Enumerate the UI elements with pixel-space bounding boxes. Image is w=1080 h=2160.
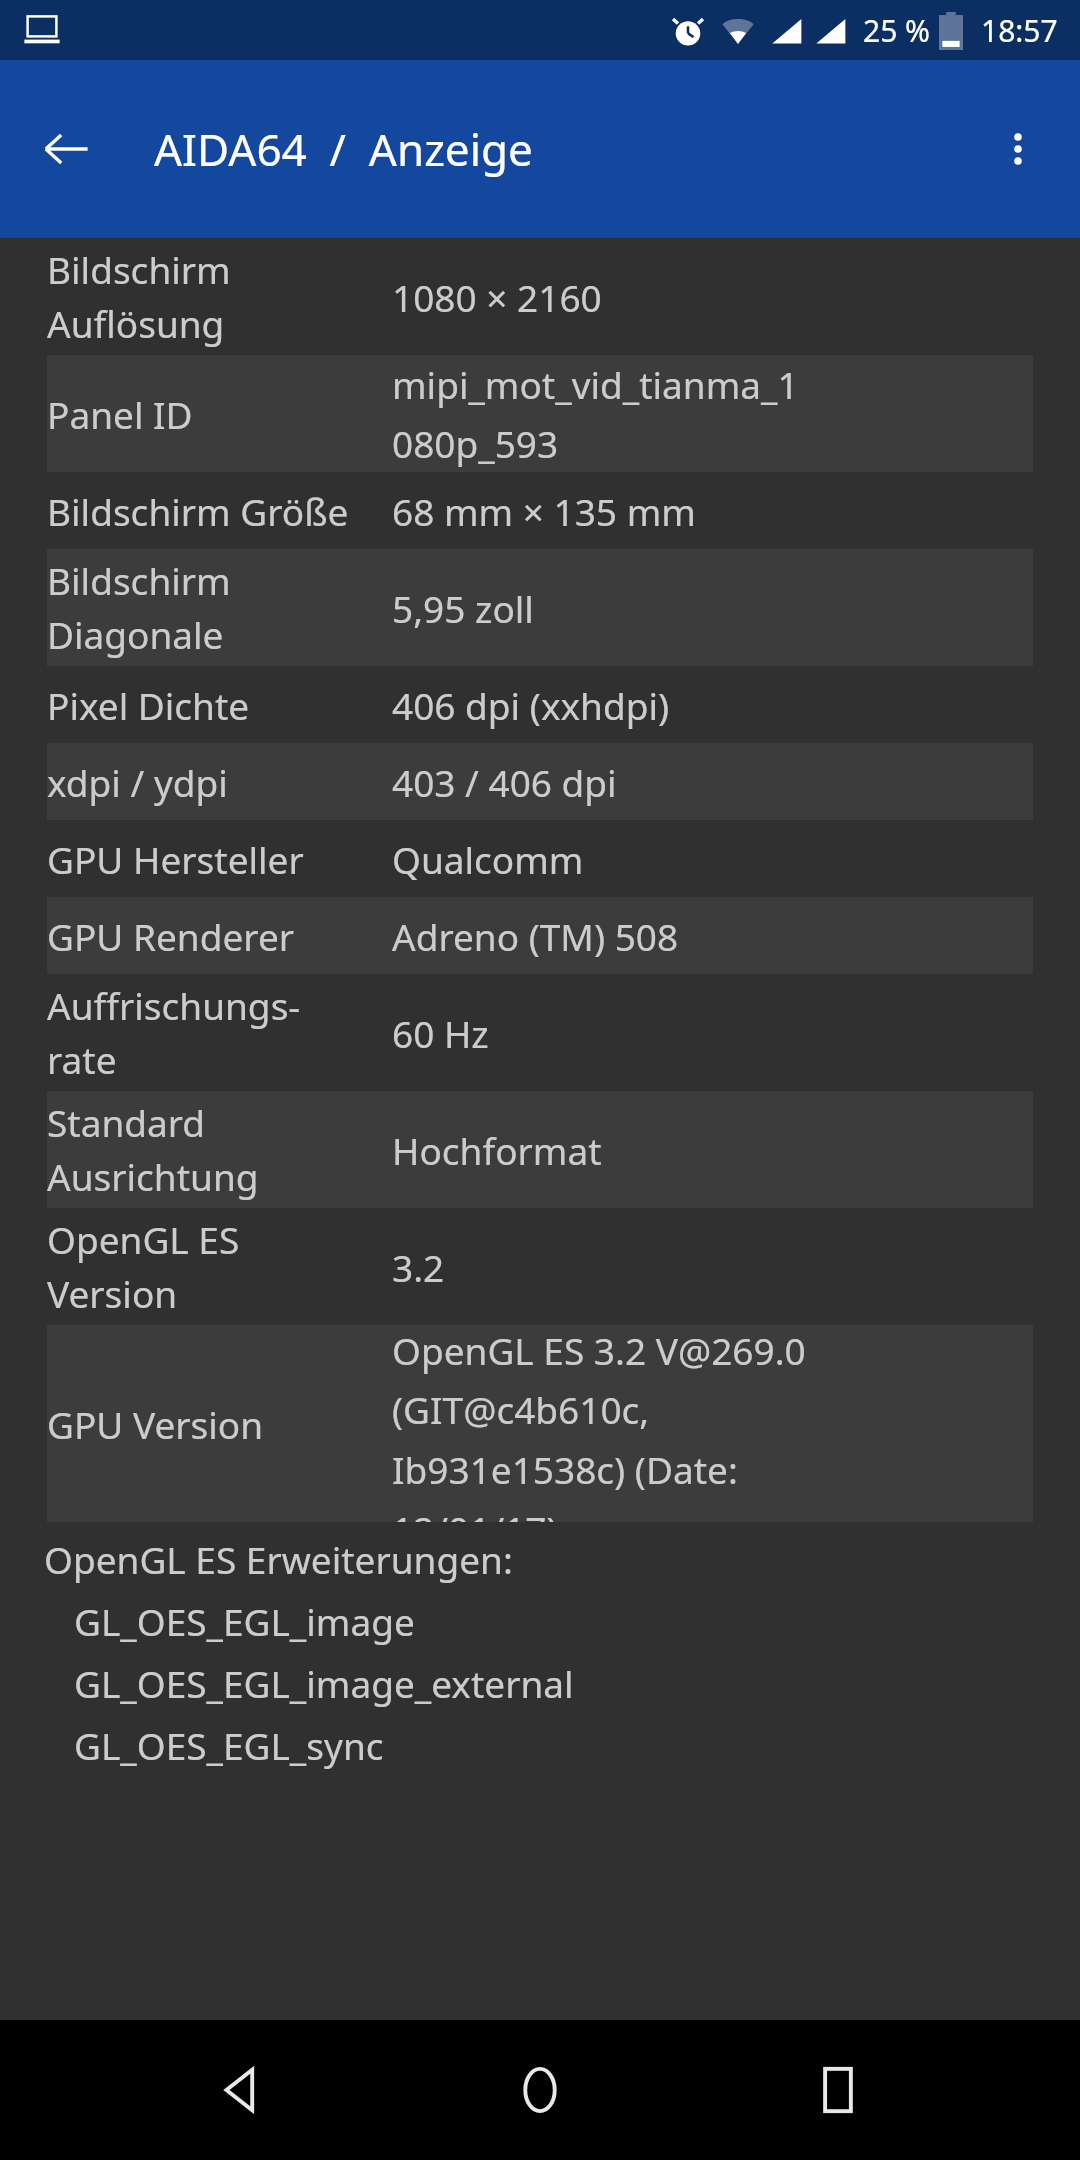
button[interactable]: xdpi / ydpi <box>0 743 1080 820</box>
staticText: 403 / 406 dpi <box>392 757 617 807</box>
button[interactable]: Bildschirm Diagonale <box>0 549 1080 666</box>
staticText: xdpi / ydpi <box>47 757 377 807</box>
staticText: OpenGL ES Version <box>47 1214 377 1319</box>
staticText: 68 mm × 135 mm <box>392 486 696 536</box>
staticText: Panel ID <box>47 389 377 439</box>
button[interactable]: Panel ID <box>0 355 1080 472</box>
button[interactable]: GPU Version <box>0 1325 1080 1522</box>
button[interactable]: Auffrischungs- rate <box>0 974 1080 1091</box>
staticText: 1080 × 2160 <box>392 272 602 322</box>
button[interactable]: Standard Ausrichtung <box>0 1091 1080 1208</box>
button[interactable]: Home <box>485 2035 595 2145</box>
button[interactable]: More options <box>980 111 1056 187</box>
button[interactable]: Bildschirm Auflösung <box>0 238 1080 355</box>
staticText: AIDA64 / Anzeige <box>154 119 533 179</box>
staticText: 406 dpi (xxhdpi) <box>392 680 670 730</box>
staticText: Bildschirm Diagonale <box>47 555 377 660</box>
staticText: 3.2 <box>392 1242 445 1292</box>
staticText: GL_OES_EGL_image_external <box>74 1658 574 1708</box>
staticText: 25 % <box>863 10 931 51</box>
staticText: GPU Hersteller <box>47 834 377 884</box>
button[interactable]: Bildschirm Größe <box>0 472 1080 549</box>
staticText: GL_OES_EGL_image <box>74 1596 415 1646</box>
button[interactable]: Recent apps <box>783 2035 893 2145</box>
staticText: OpenGL ES Erweiterungen: <box>44 1534 513 1584</box>
button[interactable]: Back <box>30 113 102 185</box>
staticText: GPU Version <box>47 1399 377 1449</box>
staticText: Hochformat <box>392 1125 602 1175</box>
staticText: GPU Renderer <box>47 911 377 961</box>
staticText: GL_OES_EGL_sync <box>74 1720 384 1770</box>
staticText: Adreno (TM) 508 <box>392 911 679 961</box>
staticText: 5,95 zoll <box>392 583 534 633</box>
staticText: mipi_mot_vid_tianma_1 080p_593 <box>392 359 799 469</box>
staticText: 60 Hz <box>392 1008 489 1058</box>
staticText: Pixel Dichte <box>47 680 377 730</box>
staticText: Standard Ausrichtung <box>47 1097 377 1202</box>
staticText: Bildschirm Größe <box>47 486 377 536</box>
staticText: Auffrischungs- rate <box>47 980 377 1085</box>
button[interactable]: GPU Renderer <box>0 897 1080 974</box>
button[interactable]: OpenGL ES Version <box>0 1208 1080 1325</box>
staticText: Qualcomm <box>392 834 584 884</box>
button[interactable]: GPU Hersteller <box>0 820 1080 897</box>
button[interactable]: Pixel Dichte <box>0 666 1080 743</box>
staticText: 18:57 <box>981 10 1058 51</box>
button[interactable]: Back <box>188 2035 298 2145</box>
staticText: Bildschirm Auflösung <box>47 244 377 349</box>
staticText: OpenGL ES 3.2 V@269.0 (GIT@c4b610c, Ib93… <box>392 1325 806 1522</box>
